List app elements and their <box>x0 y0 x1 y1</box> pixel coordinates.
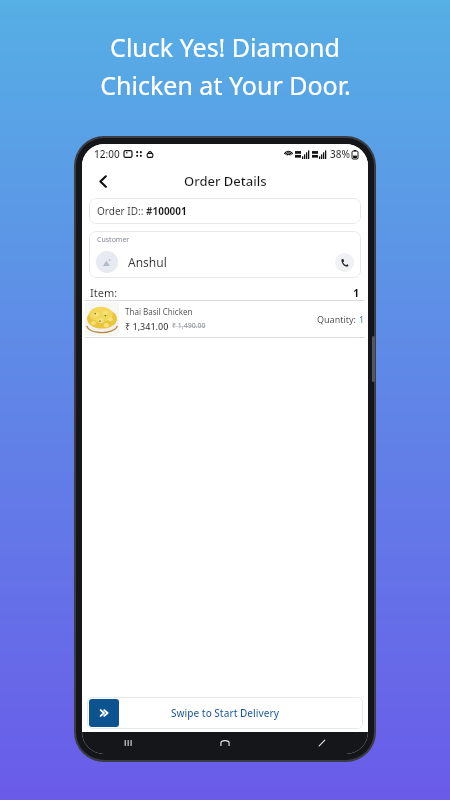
staticText: 1 <box>359 313 365 325</box>
button[interactable]: Customer <box>89 231 361 278</box>
button[interactable]: Call customer <box>335 253 354 272</box>
staticText: Chicken at Your Door. <box>100 68 351 102</box>
button[interactable]: Swipe to Start Delivery <box>87 697 363 729</box>
button[interactable]: Home <box>213 732 237 754</box>
staticText: #100001 <box>146 204 187 218</box>
staticText: Quantity: <box>317 313 359 325</box>
staticText: ₹ 1,341.00 <box>125 320 169 332</box>
button[interactable]: Recent apps <box>116 732 140 754</box>
button[interactable]: Back <box>88 166 118 196</box>
staticText: Item: <box>90 285 118 300</box>
button[interactable]: Thai Basil Chicken <box>85 301 365 337</box>
button[interactable]: Back <box>310 732 334 754</box>
staticText: Thai Basil Chicken <box>125 306 193 317</box>
staticText: 1 <box>353 285 360 300</box>
staticText: 12:00 <box>94 147 120 161</box>
staticText: 38% <box>330 147 350 161</box>
button[interactable]: Order ID:: <box>89 198 361 224</box>
staticText: Order ID:: <box>97 204 146 218</box>
staticText: Anshul <box>128 254 167 270</box>
staticText: Swipe to Start Delivery <box>171 706 280 720</box>
button[interactable]: Swipe to start delivery <box>89 699 119 727</box>
staticText: Cluck Yes! Diamond <box>110 30 340 64</box>
staticText: Customer <box>97 235 130 245</box>
staticText: Order Details <box>184 172 267 190</box>
staticText: ₹ 1,490.00 <box>172 321 206 331</box>
